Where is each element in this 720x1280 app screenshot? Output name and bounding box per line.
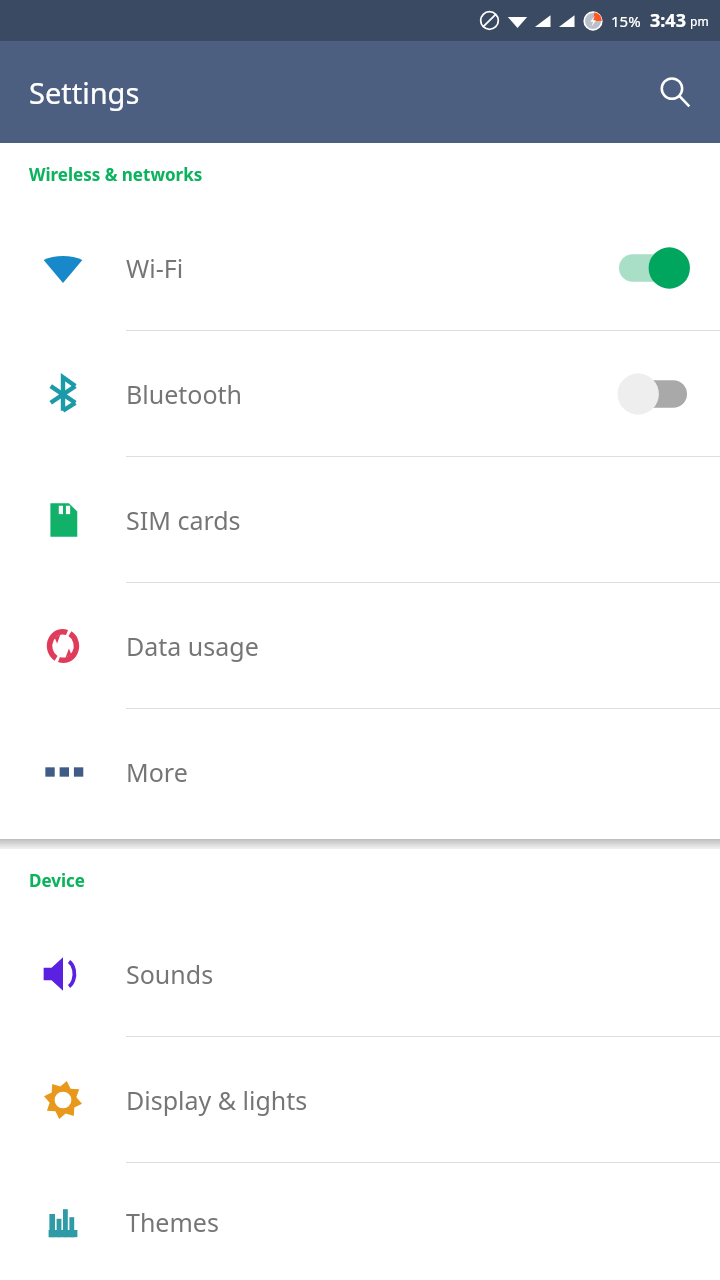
staticText: Data usage (126, 629, 259, 663)
staticText: Wireless & networks (29, 163, 203, 186)
button[interactable]: More (0, 709, 720, 835)
staticText: 3:43 (650, 8, 686, 33)
staticText: Wi-Fi (126, 251, 184, 285)
staticText: Bluetooth (126, 377, 243, 411)
button[interactable]: Data usage (0, 583, 720, 709)
button[interactable] (616, 246, 690, 290)
button[interactable]: Wi-Fi (0, 205, 720, 331)
staticText: Sounds (126, 957, 214, 991)
staticText: 15% (611, 11, 641, 31)
button[interactable]: Bluetooth (0, 331, 720, 457)
staticText: Display & lights (126, 1083, 308, 1117)
staticText: Themes (126, 1205, 219, 1239)
staticText: Settings (29, 73, 140, 112)
staticText: More (126, 755, 188, 789)
button[interactable]: Themes (0, 1163, 720, 1280)
button[interactable]: Sounds (0, 911, 720, 1037)
staticText: SIM cards (126, 503, 241, 537)
button[interactable]: SIM cards (0, 457, 720, 583)
button[interactable]: Display & lights (0, 1037, 720, 1163)
button[interactable] (616, 372, 690, 416)
staticText: Device (29, 869, 85, 892)
button[interactable]: Search (651, 68, 699, 116)
staticText: pm (690, 13, 709, 29)
